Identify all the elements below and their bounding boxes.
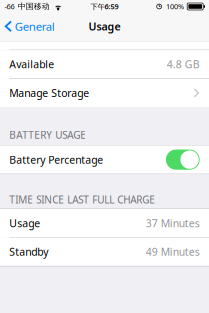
staticText: -66 [5, 2, 15, 11]
staticText: 下午6:59 [90, 2, 118, 11]
staticText: Manage Storage [9, 86, 89, 100]
button[interactable]: General [0, 16, 59, 37]
staticText: 4.8 GB [167, 57, 200, 71]
staticText: Battery Percentage [9, 153, 103, 167]
button[interactable]: Manage Storage [0, 79, 209, 107]
button[interactable]: Battery Percentage [166, 149, 200, 170]
staticText: 100% [166, 2, 184, 11]
staticText: 37 Minutes [146, 216, 200, 230]
staticText: 49 Minutes [146, 245, 200, 259]
staticText: Usage [88, 19, 120, 33]
staticText: BATTERY USAGE [9, 128, 86, 142]
staticText: Available [9, 57, 54, 71]
staticText: Standby [9, 245, 48, 259]
staticText: Usage [9, 216, 40, 230]
staticText: General [15, 19, 55, 34]
staticText: TIME SINCE LAST FULL CHARGE [9, 193, 155, 206]
staticText: 中国移动 [18, 2, 50, 11]
